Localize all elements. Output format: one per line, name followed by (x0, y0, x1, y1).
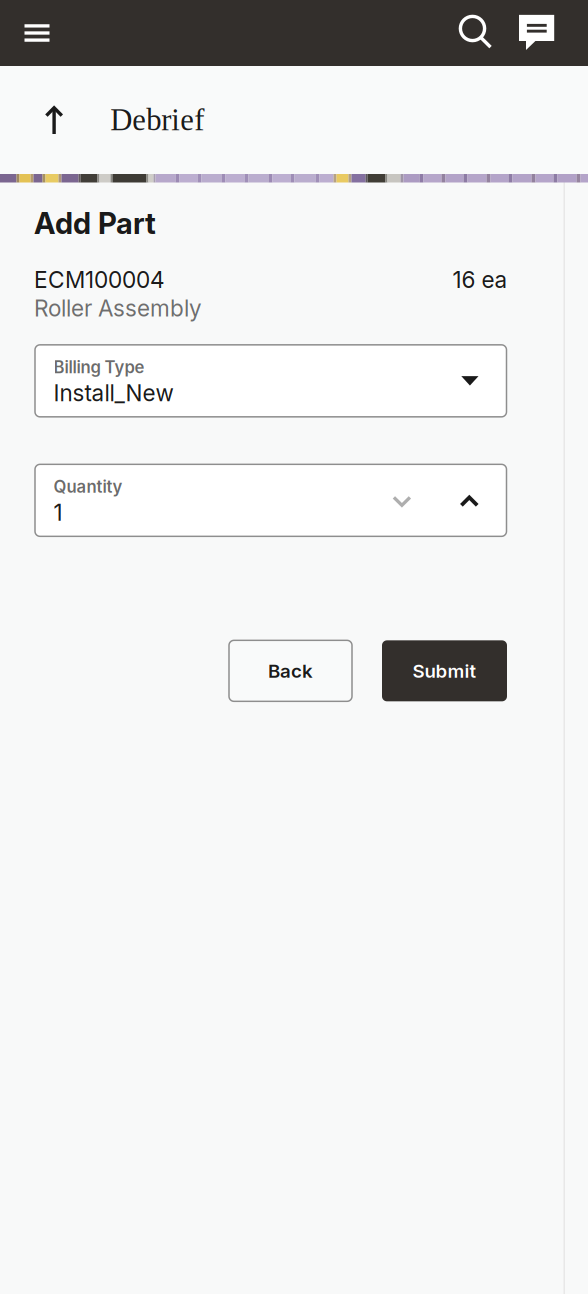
staticText: Quantity (53, 476, 122, 497)
button[interactable]: Back (0, 66, 97, 174)
button[interactable]: Messages (505, 0, 588, 66)
staticText: Debrief (110, 103, 204, 137)
staticText: Install_New (53, 379, 173, 407)
staticText: Add Part (34, 205, 156, 241)
staticText: ECM100004 (34, 266, 165, 293)
staticText: Billing Type (53, 357, 144, 377)
button[interactable]: Back (229, 640, 352, 701)
staticText: Back (268, 660, 313, 682)
button[interactable]: Search (442, 0, 505, 66)
button[interactable]: Menu (0, 0, 71, 66)
staticText: Roller Assembly (34, 294, 202, 322)
button[interactable]: Increase quantity (446, 490, 493, 510)
button[interactable]: Decrease quantity (375, 491, 446, 510)
staticText: 1 (53, 499, 62, 526)
button[interactable]: Submit (382, 640, 507, 701)
staticText: Submit (412, 660, 476, 682)
button[interactable]: Billing Type (35, 345, 506, 417)
staticText: 16 ea (452, 266, 507, 293)
